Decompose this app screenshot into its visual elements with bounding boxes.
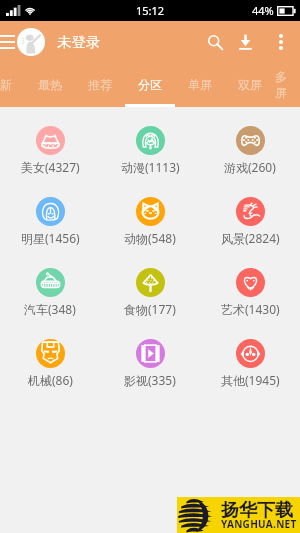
button[interactable]: Menu [0,21,20,62]
staticText: 推荐 [88,77,112,92]
button[interactable]: 最新 [0,62,25,107]
staticText: 机械(86) [28,372,73,388]
staticText: 风景(2824) [221,230,280,246]
button[interactable]: 双屏 [225,62,275,107]
button[interactable]: 动物(548) [100,186,200,257]
button[interactable]: Downloads [228,25,262,59]
staticText: 动漫(1113) [121,159,180,175]
staticText: 单屏 [188,77,212,92]
button[interactable]: 机械(86) [0,328,100,399]
staticText: 44% [252,3,274,18]
button[interactable]: 汽车(348) [0,257,100,328]
button[interactable]: Account [17,28,45,56]
button[interactable]: 游戏(260) [200,115,300,186]
staticText: 美女(4327) [21,159,80,175]
staticText: 影视(335) [124,372,176,388]
button[interactable]: 动漫(1113) [100,115,200,186]
staticText: YANGHUA.NET [221,517,297,531]
staticText: 明星(1456) [21,230,80,246]
staticText: 分区 [138,77,162,92]
button[interactable]: 分区 [125,62,175,107]
button[interactable]: 影视(335) [100,328,200,399]
staticText: 双屏 [238,77,262,92]
button[interactable]: 美女(4327) [0,115,100,186]
staticText: 汽车(348) [24,301,76,317]
button[interactable]: 推荐 [75,62,125,107]
staticText: 未登录 [57,33,101,51]
staticText: 其他(1945) [221,372,280,388]
button[interactable]: 风景(2824) [200,186,300,257]
button[interactable]: 最热 [25,62,75,107]
staticText: 动物(548) [124,230,176,246]
staticText: 最热 [38,77,62,92]
button[interactable]: 明星(1456) [0,186,100,257]
button[interactable]: 食物(177) [100,257,200,328]
button[interactable]: 其他(1945) [200,328,300,399]
staticText: 15:12 [136,3,165,18]
staticText: 最新 [0,77,12,92]
button[interactable]: 单屏 [175,62,225,107]
button[interactable]: More options [267,28,295,56]
staticText: 食物(177) [124,301,176,317]
staticText: 扬华下载 [221,499,293,522]
button[interactable]: Search [198,25,232,59]
staticText: 艺术(1430) [221,301,280,317]
button[interactable]: 艺术(1430) [200,257,300,328]
staticText: 游戏(260) [224,159,276,175]
